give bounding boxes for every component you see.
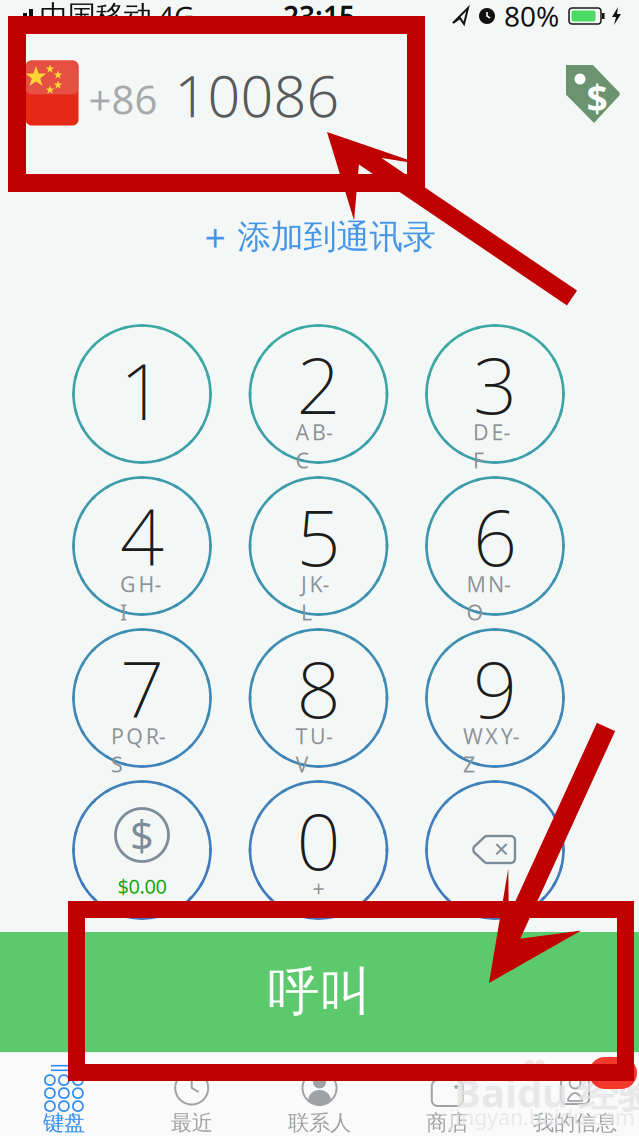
staticText: PQRS [111,722,173,750]
staticText: 6 [473,485,517,587]
button[interactable]: 5 [250,477,387,614]
staticText: 5 [296,485,340,587]
staticText: 最近 [171,1110,213,1136]
staticText: 联系人 [288,1110,351,1136]
button[interactable]: 最近 [128,1052,256,1135]
button[interactable]: 9 [426,629,563,766]
staticText: jingyan.baidu.com [449,1103,635,1131]
button[interactable]: Balance [73,781,210,918]
staticText: ABC [296,418,341,446]
staticText: 添加到通讯录 [237,216,435,257]
staticText: 80% [504,0,559,35]
staticText: MNO [467,570,523,598]
button[interactable]: Rates [564,63,624,125]
staticText: 1 [120,339,164,441]
button[interactable]: 我的信息 [511,1052,639,1135]
staticText: 4G [158,0,194,35]
staticText: 我的信息 [533,1110,617,1136]
staticText: 键盘 [43,1110,85,1136]
staticText: 4 [120,485,164,587]
staticText: 中国移动 [40,0,152,33]
button[interactable]: 0 [250,781,387,918]
staticText: GHI [120,570,164,598]
staticText: 9 [473,637,517,739]
button[interactable]: 呼叫 [0,932,639,1052]
button[interactable]: 联系人 [256,1052,383,1135]
staticText: 呼叫 [267,960,371,1024]
staticText: 8 [296,637,340,739]
button[interactable]: 4 [73,477,210,614]
button[interactable]: 1 [73,325,210,462]
staticText: JKL [301,570,336,598]
staticText: DEF [473,418,517,446]
staticText: 商店 [426,1110,468,1136]
button[interactable]: 键盘 [0,1052,128,1135]
staticText: $ [130,808,154,862]
staticText: +86 [88,72,157,125]
staticText: 23:15 [283,0,355,35]
staticText: $0.00 [117,873,166,899]
button[interactable]: 3 [426,325,563,462]
button[interactable]: 7 [73,629,210,766]
staticText: 2 [296,333,340,435]
button[interactable]: 6 [426,477,563,614]
button[interactable]: Delete [426,781,563,918]
button[interactable]: 2 [250,325,387,462]
staticText: 3 [473,333,517,435]
button[interactable]: 商店 [383,1052,511,1135]
staticText: 10086 [174,57,339,133]
staticText: 7 [120,637,164,739]
staticText: $ [586,73,607,123]
staticText: + [312,874,324,902]
button[interactable]: 8 [250,629,387,766]
staticText: WXYZ [463,722,527,750]
staticText: ✕ [493,838,510,861]
staticText: + [204,212,225,262]
staticText: Baidu 经验 [454,1065,639,1119]
staticText: 0 [296,789,340,891]
button[interactable]: + [170,209,470,265]
staticText: TUV [296,722,341,750]
